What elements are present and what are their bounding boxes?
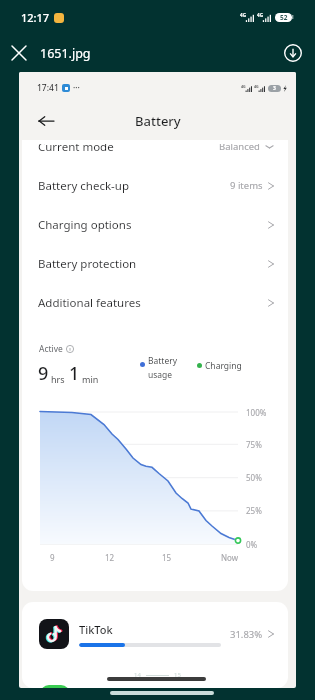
button[interactable]: Charging options bbox=[22, 205, 288, 244]
button[interactable]: Close bbox=[6, 40, 32, 66]
button[interactable]: Download bbox=[280, 40, 306, 66]
staticText: 14 bbox=[134, 671, 141, 679]
staticText: 1651.jpg bbox=[40, 45, 91, 62]
staticText: 9 bbox=[38, 361, 49, 386]
staticText: 1 bbox=[69, 361, 80, 386]
button[interactable]: TikTok bbox=[22, 604, 288, 664]
staticText: 12:17 bbox=[21, 10, 50, 25]
staticText: Additional features bbox=[38, 295, 141, 311]
staticText: 3 bbox=[273, 85, 276, 92]
staticText: 75% bbox=[246, 439, 262, 450]
staticText: Charging options bbox=[38, 217, 132, 233]
staticText: Current mode bbox=[38, 140, 114, 155]
staticText: 4G bbox=[254, 84, 259, 89]
staticText: Battery protection bbox=[38, 256, 137, 272]
staticText: TikTok bbox=[79, 622, 113, 637]
button[interactable]: Current mode bbox=[22, 140, 288, 166]
staticText: 9 bbox=[50, 552, 55, 563]
button[interactable]: Battery check-up bbox=[22, 166, 288, 205]
staticText: 4G bbox=[257, 12, 263, 18]
staticText: 50% bbox=[246, 472, 262, 483]
staticText: 100% bbox=[246, 407, 267, 418]
staticText: 31.83% bbox=[230, 628, 263, 641]
staticText: Active bbox=[39, 343, 63, 355]
staticText: ••• bbox=[73, 84, 80, 92]
staticText: 15 bbox=[162, 552, 172, 563]
staticText: 9 items bbox=[230, 179, 263, 192]
staticText: 52 bbox=[280, 13, 288, 22]
staticText: usage bbox=[148, 369, 173, 381]
staticText: 0% bbox=[246, 539, 258, 550]
staticText: Battery bbox=[148, 355, 178, 367]
staticText: Balanced bbox=[219, 140, 260, 153]
staticText: Battery bbox=[135, 112, 181, 130]
staticText: min bbox=[82, 373, 99, 385]
staticText: 15 bbox=[174, 671, 181, 679]
staticText: hrs bbox=[51, 373, 65, 385]
staticText: 4G bbox=[240, 12, 246, 18]
staticText: 25% bbox=[246, 505, 262, 516]
button[interactable]: Additional features bbox=[22, 283, 288, 322]
staticText: Battery check-up bbox=[38, 178, 129, 194]
staticText: 4G bbox=[241, 84, 246, 89]
button[interactable]: Battery protection bbox=[22, 244, 288, 283]
staticText: Charging bbox=[205, 360, 242, 372]
staticText: Now bbox=[221, 552, 239, 563]
staticText: 12 bbox=[105, 552, 115, 563]
button[interactable]: Back bbox=[33, 108, 59, 134]
staticText: 17:41 bbox=[37, 82, 59, 94]
